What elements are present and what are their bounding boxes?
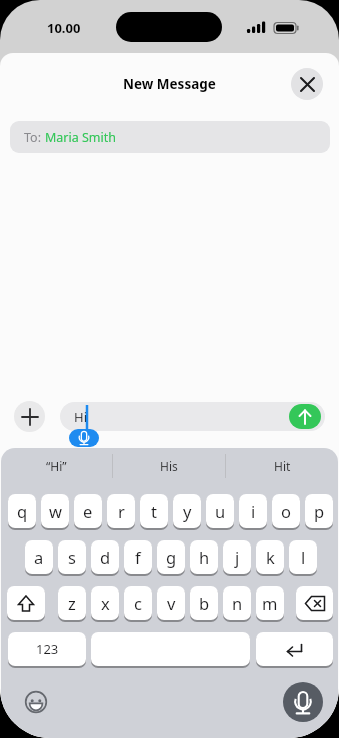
staticText: q [17,500,28,522]
staticText: j [235,546,240,568]
button[interactable]: Hit [226,448,338,484]
button[interactable]: x [91,586,119,621]
button[interactable]: k [256,540,284,575]
button[interactable]: t [140,494,168,529]
button[interactable]: y [173,494,201,529]
staticText: v [167,592,176,614]
button[interactable]: Hi [60,402,325,431]
staticText: p [314,500,325,522]
button[interactable]: w [41,494,69,529]
staticText: a [34,546,44,568]
staticText: t [151,500,157,522]
staticText: m [262,592,278,614]
button[interactable]: d [91,540,119,575]
button[interactable]: v [157,586,185,621]
button[interactable]: “Hi” [1,448,112,484]
staticText: g [166,546,177,568]
button[interactable]: a [25,540,53,575]
button[interactable]: o [272,494,300,529]
button[interactable]: n [223,586,251,621]
button[interactable]: To: [10,121,330,153]
button[interactable] [91,632,250,667]
button[interactable]: 123 [8,632,86,667]
button[interactable]: z [58,586,86,621]
button[interactable]: j [223,540,251,575]
button[interactable]: f [124,540,152,575]
staticText: b [199,592,210,614]
button[interactable]: i [239,494,267,529]
staticText: New Message [123,75,216,93]
button[interactable] [296,586,333,621]
button[interactable]: q [8,494,36,529]
staticText: His [160,458,178,474]
staticText: 10.00 [47,19,81,37]
button[interactable]: r [107,494,135,529]
staticText: r [118,500,125,522]
button[interactable]: u [206,494,234,529]
button[interactable]: p [305,494,333,529]
staticText: f [135,546,141,568]
staticText: k [266,546,275,568]
staticText: i [251,500,256,522]
button[interactable]: h [190,540,218,575]
button[interactable] [25,691,47,713]
staticText: c [134,592,142,614]
staticText: Maria Smith [45,129,117,146]
button[interactable] [256,632,333,667]
staticText: h [199,546,210,568]
button[interactable]: e [74,494,102,529]
staticText: Hi [74,408,87,426]
staticText: d [100,546,111,568]
button[interactable] [7,586,45,621]
staticText: s [68,546,76,568]
staticText: 123 [36,640,59,658]
staticText: x [101,592,110,614]
button[interactable]: b [190,586,218,621]
button[interactable]: m [256,586,284,621]
staticText: To: [24,129,45,146]
button[interactable] [291,68,323,100]
button[interactable]: g [157,540,185,575]
staticText: z [68,592,76,614]
staticText: o [281,500,291,522]
staticText: l [301,546,306,568]
staticText: u [215,500,226,522]
staticText: n [232,592,243,614]
staticText: y [183,500,192,522]
button[interactable]: His [113,448,225,484]
button[interactable] [289,404,321,429]
staticText: e [83,500,93,522]
staticText: Hit [274,458,291,474]
staticText: “Hi” [46,458,67,474]
button[interactable] [283,682,323,722]
button[interactable]: l [289,540,317,575]
button[interactable]: c [124,586,152,621]
button[interactable] [14,401,45,432]
button[interactable]: s [58,540,86,575]
staticText: w [49,500,62,522]
